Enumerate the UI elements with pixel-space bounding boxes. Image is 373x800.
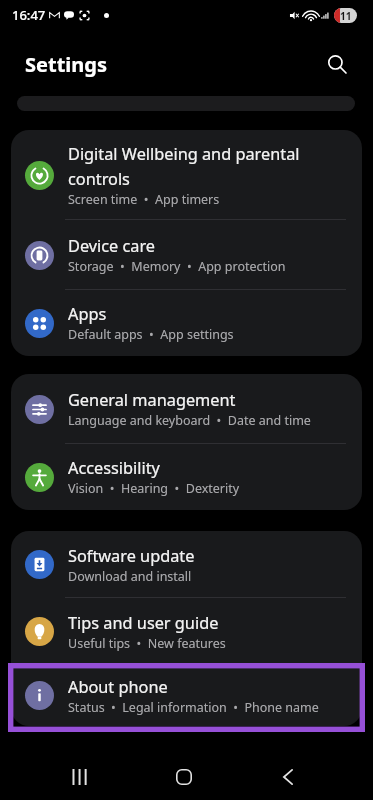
- staticText: Apps: [68, 303, 107, 325]
- staticText: Software update: [68, 545, 195, 567]
- button[interactable]: Software update: [11, 531, 362, 598]
- button[interactable]: Search: [317, 44, 357, 84]
- button[interactable]: Tips and user guide: [11, 598, 362, 665]
- staticText: Status • Legal information • Phone name: [68, 699, 319, 716]
- staticText: Device care: [68, 235, 156, 257]
- button[interactable]: Apps: [11, 290, 362, 356]
- button[interactable]: Accessibility: [11, 444, 362, 510]
- staticText: 11: [340, 9, 352, 23]
- staticText: Screen time • App timers: [68, 191, 220, 208]
- button[interactable]: General management: [11, 374, 362, 444]
- button[interactable]: Device care: [11, 220, 362, 290]
- staticText: Accessibility: [68, 457, 160, 479]
- staticText: Vision • Hearing • Dexterity: [68, 480, 240, 497]
- staticText: Storage • Memory • App protection: [68, 258, 286, 275]
- button[interactable]: Digital Wellbeing and parental controls: [11, 130, 362, 220]
- staticText: Settings: [25, 51, 107, 78]
- staticText: 16:47: [12, 6, 46, 24]
- staticText: Useful tips • New features: [68, 635, 226, 652]
- staticText: Default apps • App settings: [68, 326, 234, 343]
- staticText: Tips and user guide: [68, 612, 219, 634]
- button[interactable]: Home: [160, 754, 208, 800]
- staticText: Download and install: [68, 568, 192, 585]
- button[interactable]: Recent apps: [56, 754, 104, 800]
- button[interactable]: Back: [264, 754, 312, 800]
- button[interactable]: About phone: [11, 665, 362, 726]
- staticText: Digital Wellbeing and parental controls: [68, 143, 348, 190]
- staticText: Language and keyboard • Date and time: [68, 412, 311, 429]
- staticText: About phone: [68, 676, 168, 698]
- staticText: General management: [68, 389, 236, 411]
